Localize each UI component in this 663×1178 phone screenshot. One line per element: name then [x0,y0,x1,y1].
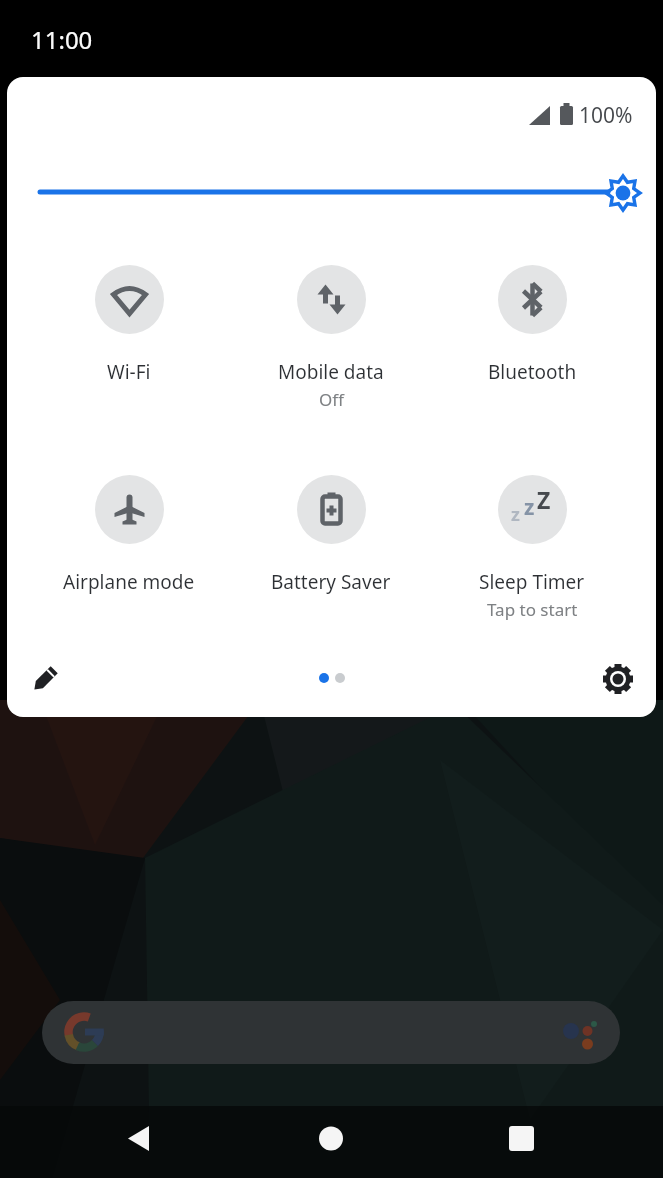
staticText: Z [537,484,551,515]
staticText: z [511,502,520,527]
staticText: z [524,493,535,522]
button[interactable] [108,1108,170,1170]
button[interactable] [27,172,607,212]
staticText: Tap to start [487,598,578,621]
button[interactable]: Bluetooth [437,265,627,385]
button[interactable] [300,1108,362,1170]
staticText: Mobile data [278,359,384,385]
staticText: Bluetooth [488,359,577,385]
button[interactable] [491,1108,553,1170]
staticText: Battery Saver [271,569,391,595]
button[interactable]: Wi-Fi [34,265,224,385]
staticText: Wi-Fi [107,359,151,385]
button[interactable]: Sleep Timer [437,475,627,621]
staticText: Sleep Timer [479,569,585,595]
staticText: 100% [579,101,633,130]
button[interactable]: Airplane mode [34,475,224,595]
button[interactable] [42,1001,620,1064]
staticText: Airplane mode [63,569,195,595]
button[interactable] [598,659,638,699]
staticText: 11:00 [31,23,93,56]
staticText: Off [319,388,344,411]
button[interactable]: Mobile data [236,265,426,411]
button[interactable] [25,659,65,699]
button[interactable]: Battery Saver [236,475,426,595]
